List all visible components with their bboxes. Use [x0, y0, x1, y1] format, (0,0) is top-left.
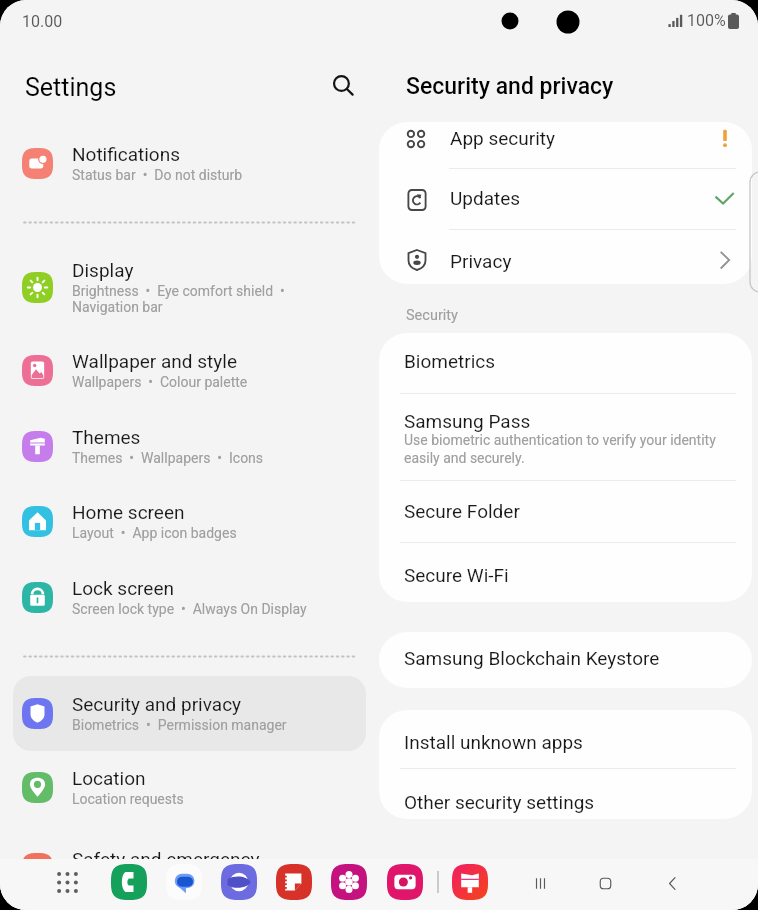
- staticText: Security and privacy: [406, 73, 614, 100]
- staticText: Settings: [25, 73, 117, 102]
- button[interactable]: Secure Wi-Fi: [379, 542, 752, 602]
- button[interactable]: App: [385, 862, 425, 902]
- button[interactable]: [13, 560, 366, 635]
- button[interactable]: App: [329, 862, 369, 902]
- staticText: Notifications: [72, 143, 181, 165]
- staticText: Secure Folder: [404, 500, 520, 522]
- staticText: Samsung Blockchain Keystore: [404, 647, 660, 669]
- button[interactable]: Privacy: [379, 229, 752, 284]
- staticText: 10.00: [22, 12, 63, 31]
- button[interactable]: All apps: [47, 862, 87, 902]
- button[interactable]: Recents: [519, 862, 561, 904]
- button[interactable]: Secure Folder: [379, 480, 752, 542]
- button[interactable]: App: [109, 862, 149, 902]
- staticText: Screen lock type • Always On Display: [72, 601, 307, 617]
- button[interactable]: [13, 242, 366, 336]
- button[interactable]: Home: [584, 862, 626, 904]
- button[interactable]: App: [450, 862, 490, 902]
- button[interactable]: App security: [379, 122, 752, 169]
- button[interactable]: App: [164, 862, 204, 902]
- button[interactable]: [13, 484, 366, 559]
- staticText: Location requests: [72, 791, 184, 807]
- staticText: Security and privacy: [72, 693, 242, 715]
- button[interactable]: App: [219, 862, 259, 902]
- button[interactable]: Updates: [379, 168, 752, 229]
- button[interactable]: [13, 333, 366, 408]
- button[interactable]: [13, 831, 366, 906]
- staticText: Themes • Wallpapers • Icons: [72, 450, 264, 466]
- button[interactable]: Back: [651, 862, 693, 904]
- staticText: Updates: [450, 187, 521, 209]
- button[interactable]: [13, 750, 366, 825]
- staticText: Location: [72, 767, 146, 789]
- staticText: Biometrics • Permission manager: [72, 717, 287, 733]
- staticText: Status bar • Do not disturb: [72, 167, 243, 183]
- staticText: Display: [72, 259, 134, 281]
- button[interactable]: Samsung Blockchain Keystore: [379, 632, 752, 688]
- staticText: Samsung Pass: [404, 410, 531, 432]
- button[interactable]: [13, 676, 366, 751]
- staticText: 100%: [687, 11, 726, 30]
- button[interactable]: [13, 409, 366, 484]
- staticText: Use biometric authentication to verify y…: [404, 432, 716, 467]
- button[interactable]: Other security settings: [379, 768, 752, 819]
- button[interactable]: Install unknown apps: [379, 710, 752, 768]
- button[interactable]: App: [274, 862, 314, 902]
- staticText: Biometrics: [404, 350, 496, 372]
- staticText: Secure Wi-Fi: [404, 564, 509, 586]
- staticText: Security: [406, 307, 458, 324]
- button[interactable]: Samsung Pass: [379, 393, 752, 480]
- staticText: Wallpapers • Colour palette: [72, 374, 248, 390]
- staticText: Other security settings: [404, 791, 595, 813]
- button[interactable]: Search: [320, 62, 366, 108]
- button[interactable]: Biometrics: [379, 333, 752, 393]
- staticText: Lock screen: [72, 577, 175, 599]
- staticText: Home screen: [72, 501, 185, 523]
- staticText: Layout • App icon badges: [72, 525, 237, 541]
- button[interactable]: [13, 126, 366, 201]
- staticText: Safety and emergency: [72, 848, 260, 870]
- staticText: Wallpaper and style: [72, 350, 237, 372]
- staticText: Install unknown apps: [404, 731, 583, 753]
- staticText: App security: [450, 127, 556, 149]
- staticText: Brightness • Eye comfort shield •: [72, 283, 285, 299]
- staticText: Themes: [72, 426, 141, 448]
- staticText: Navigation bar: [72, 299, 163, 315]
- staticText: Privacy: [450, 250, 512, 272]
